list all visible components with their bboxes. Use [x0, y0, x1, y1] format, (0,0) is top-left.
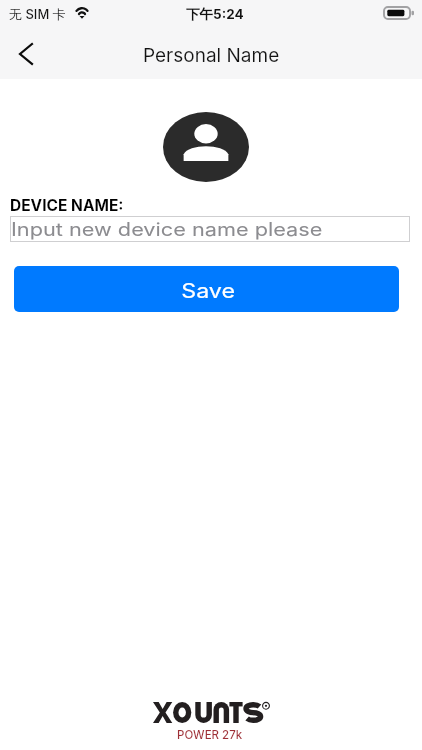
staticText: Personal Name	[143, 44, 280, 67]
staticText: Save	[181, 279, 236, 303]
staticText: DEVICE NAME:	[10, 196, 124, 215]
button[interactable]: Input new device name please	[10, 216, 410, 242]
button[interactable]: Save	[14, 266, 399, 312]
staticText: Input new device name please	[11, 219, 323, 241]
button[interactable]: Back	[6, 32, 46, 76]
staticText: 无 SIM 卡	[9, 6, 66, 22]
staticText: 下午5:24	[186, 6, 244, 23]
staticText: POWER 27k	[177, 728, 243, 742]
